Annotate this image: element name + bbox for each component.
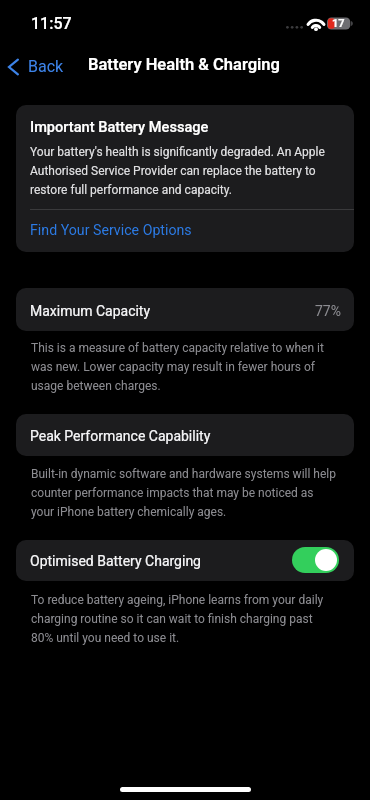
staticText: Built-in dynamic software and hardware s… <box>31 463 339 520</box>
staticText: Your battery's health is significantly d… <box>30 141 338 198</box>
button[interactable]: Peak Performance Capability <box>16 414 354 456</box>
other: Wi-Fi <box>307 17 325 30</box>
staticText: Find Your Service Options <box>30 222 192 239</box>
button[interactable]: Find Your Service Options <box>16 210 354 252</box>
staticText: Battery Health & Charging <box>88 55 280 74</box>
button[interactable]: Maximum Capacity <box>16 288 354 331</box>
staticText: 11:57 <box>31 14 72 33</box>
staticText: Important Battery Message <box>30 118 209 135</box>
button[interactable]: Back <box>0 50 74 83</box>
button[interactable]: Optimised Battery Charging <box>16 540 354 581</box>
staticText: 77% <box>315 303 341 319</box>
staticText: Maximum Capacity <box>30 303 151 319</box>
staticText: Optimised Battery Charging <box>30 553 201 569</box>
staticText: Back <box>28 57 64 76</box>
other: Cellular signal <box>285 23 305 30</box>
button[interactable]: Optimised Battery Charging <box>292 547 339 573</box>
other: Battery 17 percent <box>327 17 353 30</box>
staticText: Peak Performance Capability <box>30 428 211 444</box>
staticText: To reduce battery ageing, iPhone learns … <box>31 589 335 646</box>
staticText: This is a measure of battery capacity re… <box>31 337 339 394</box>
staticText: 17 <box>332 17 345 30</box>
